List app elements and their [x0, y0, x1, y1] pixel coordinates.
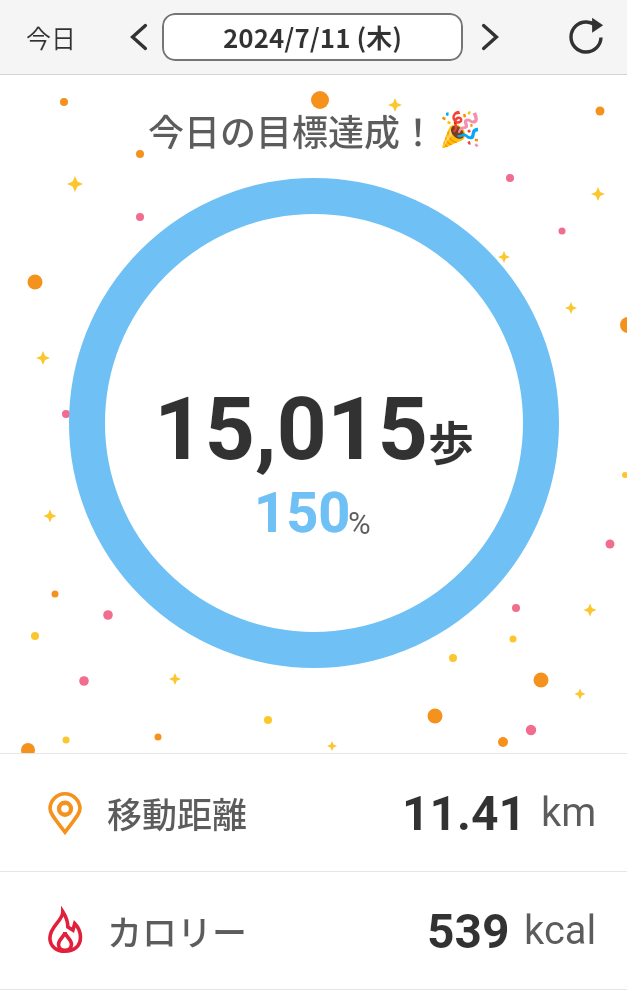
- staticText: km: [541, 789, 597, 836]
- button[interactable]: 今日: [10, 9, 93, 65]
- staticText: 2024/7/11 (木): [223, 18, 403, 56]
- staticText: 150: [254, 480, 351, 546]
- staticText: 🎉: [439, 109, 482, 149]
- staticText: %: [348, 505, 371, 541]
- staticText: 539: [427, 903, 510, 959]
- button[interactable]: カロリー: [0, 872, 627, 989]
- button[interactable]: 2024/7/11 (木): [162, 13, 463, 61]
- button[interactable]: Previous day: [118, 16, 160, 58]
- staticText: 15,015: [154, 377, 428, 480]
- staticText: 今日の目標達成！: [148, 104, 437, 156]
- staticText: 歩: [428, 407, 474, 474]
- staticText: 今日: [26, 19, 77, 55]
- staticText: 11.41: [402, 785, 527, 841]
- staticText: kcal: [524, 907, 597, 954]
- button[interactable]: 移動距離: [0, 754, 627, 871]
- staticText: 移動距離: [107, 787, 248, 838]
- button[interactable]: Refresh: [559, 10, 613, 64]
- button[interactable]: Next day: [469, 16, 511, 58]
- staticText: カロリー: [107, 905, 248, 956]
